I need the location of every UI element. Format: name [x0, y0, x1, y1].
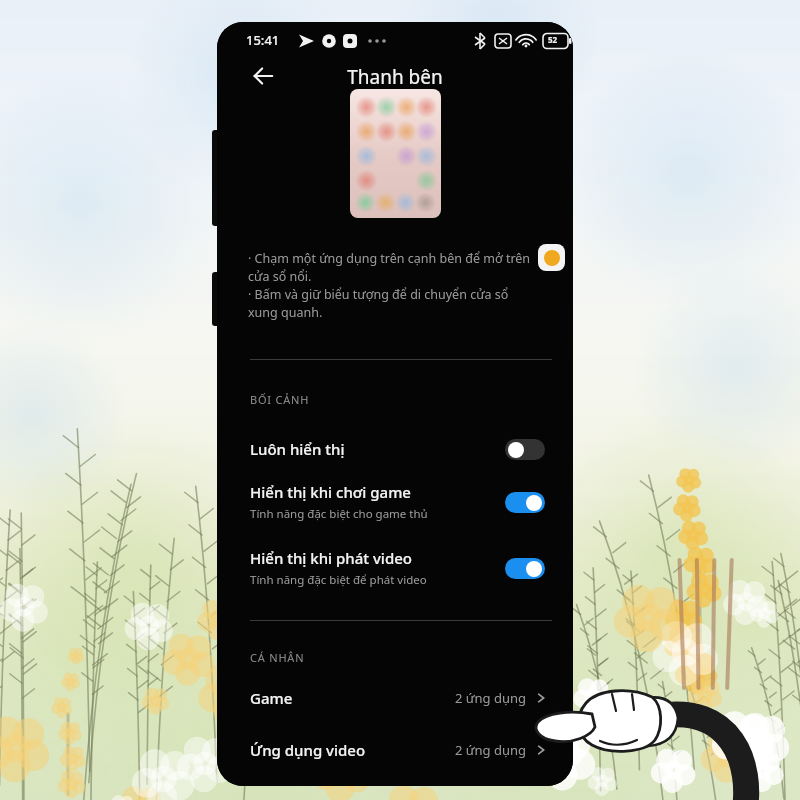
button[interactable]: Floating app icon [538, 244, 565, 271]
button[interactable]: Luôn hiển thị [217, 429, 573, 469]
staticText: Luôn hiển thị [250, 439, 345, 459]
staticText: 2 ứng dụng [455, 741, 527, 759]
staticText: 15:41 [246, 31, 280, 49]
staticText: Game [250, 688, 455, 708]
staticText: Thanh bên [217, 64, 573, 90]
staticText: Ứng dụng video [250, 740, 455, 760]
button[interactable]: On [505, 492, 545, 513]
staticText: CÁ NHÂN [250, 650, 305, 665]
button[interactable]: Back [241, 56, 285, 96]
button[interactable]: Hiển thị khi phát video [217, 543, 573, 593]
button[interactable]: Off [505, 439, 545, 460]
staticText: Hiển thị khi phát video [250, 548, 412, 568]
staticText: BỐI CẢNH [250, 392, 310, 407]
button[interactable]: Game [217, 678, 573, 718]
button[interactable]: On [505, 558, 545, 579]
staticText: · Chạm một ứng dụng trên cạnh bên để mở … [248, 250, 540, 321]
staticText: Tính năng đặc biệt để phát video [250, 572, 427, 588]
staticText: 52 [548, 34, 558, 45]
button[interactable]: Ứng dụng video [217, 730, 573, 770]
button[interactable]: Hiển thị khi chơi game [217, 477, 573, 527]
staticText: 2 ứng dụng [455, 689, 527, 707]
staticText: Hiển thị khi chơi game [250, 482, 411, 502]
staticText: Tính năng đặc biệt cho game thủ [250, 506, 428, 522]
